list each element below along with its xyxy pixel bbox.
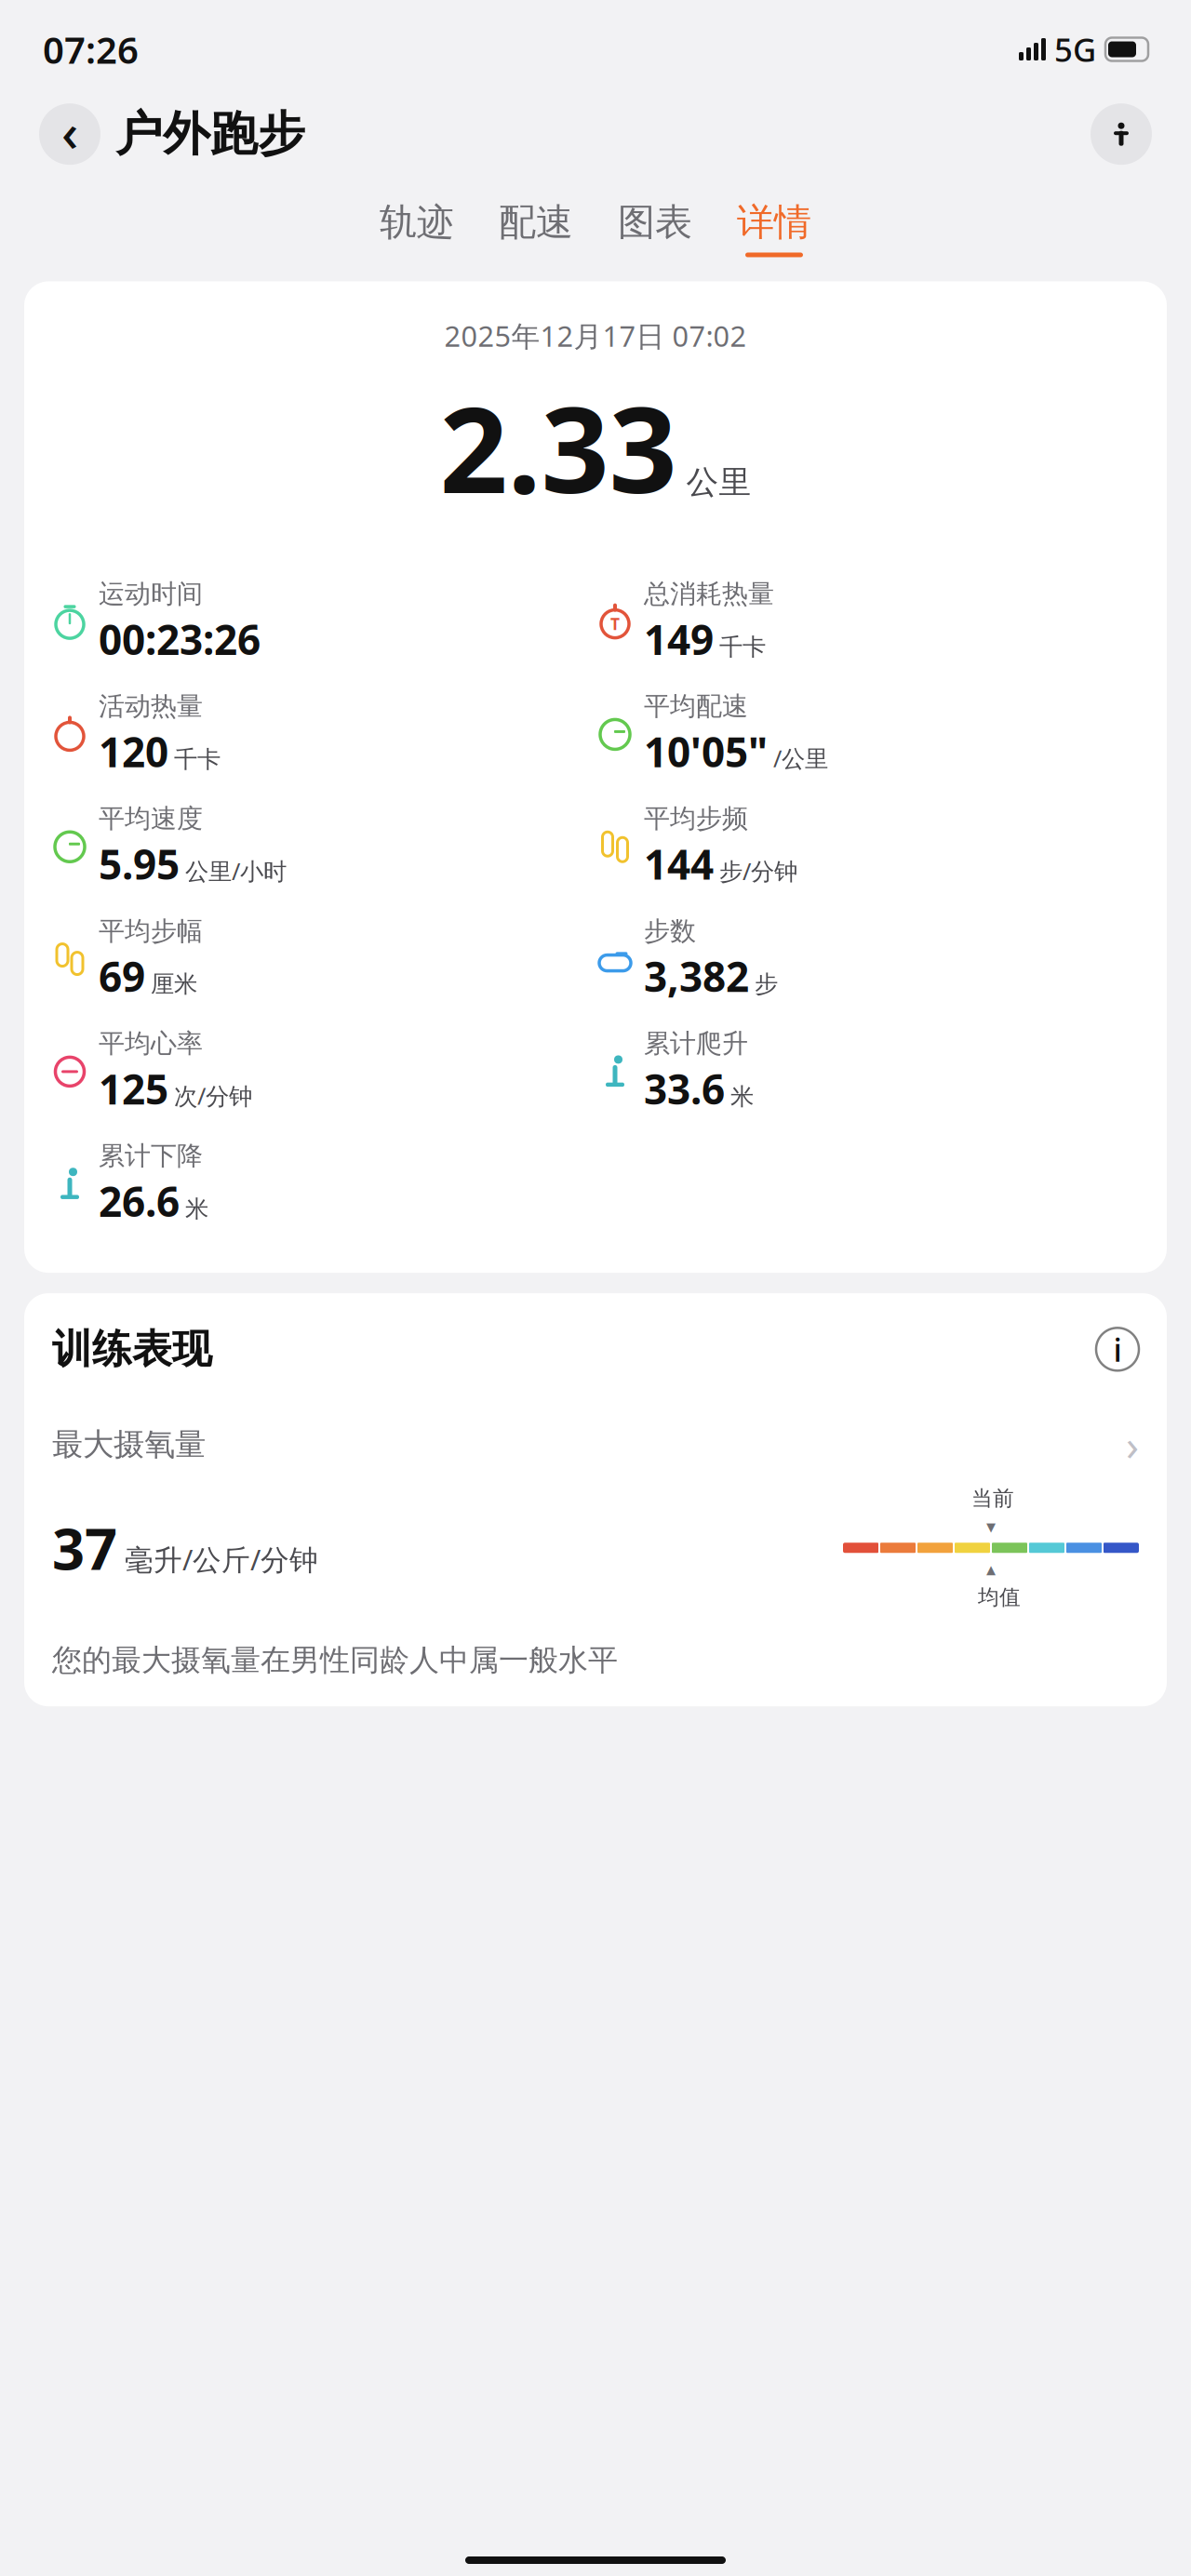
staticText: 33.6: [644, 1061, 725, 1116]
staticText: 公里: [686, 462, 751, 502]
staticText: 149: [644, 612, 714, 666]
staticText: 5.95: [99, 837, 180, 891]
staticText: 最大摄氧量: [52, 1425, 206, 1463]
button[interactable]: 图表: [612, 199, 698, 257]
staticText: 米: [730, 1082, 754, 1111]
staticText: 步数: [644, 915, 696, 947]
staticText: 详情: [737, 199, 811, 245]
staticText: 3,382: [644, 949, 749, 1003]
staticText: 平均步幅: [99, 915, 203, 947]
staticText: 均值: [978, 1584, 1021, 1610]
staticText: 平均心率: [99, 1028, 203, 1060]
staticText: 10'05": [644, 724, 768, 778]
staticText: 次/分钟: [174, 1080, 252, 1111]
staticText: 144: [644, 837, 714, 891]
staticText: 步: [755, 970, 778, 999]
staticText: 125: [99, 1061, 168, 1116]
staticText: 公里/小时: [185, 855, 287, 886]
button[interactable]: 轨迹: [374, 199, 460, 257]
staticText: 步/分钟: [719, 855, 797, 886]
staticText: 当前: [971, 1485, 1014, 1511]
staticText: 您的最大摄氧量在男性同龄人中属一般水平: [52, 1642, 618, 1678]
staticText: ▾: [986, 1516, 996, 1537]
staticText: T: [610, 613, 620, 635]
staticText: 米: [185, 1195, 208, 1223]
staticText: ▴: [986, 1559, 996, 1580]
staticText: 累计爬升: [644, 1028, 748, 1060]
staticText: i: [1113, 1328, 1122, 1371]
staticText: 活动热量: [99, 690, 203, 722]
staticText: 配速: [499, 199, 573, 245]
staticText: 37: [52, 1510, 117, 1586]
staticText: 2.33: [440, 368, 677, 526]
staticText: 运动时间: [99, 578, 203, 610]
staticText: 千卡: [719, 633, 766, 661]
staticText: 07:26: [43, 25, 139, 74]
staticText: /公里: [773, 742, 828, 774]
staticText: 69: [99, 949, 145, 1003]
staticText: 户外跑步: [115, 105, 305, 163]
button[interactable]: 详情: [731, 199, 817, 257]
button[interactable]: 配速: [493, 199, 579, 257]
staticText: 120: [99, 724, 168, 778]
button[interactable]: 说明: [1096, 1328, 1139, 1371]
staticText: 平均速度: [99, 803, 203, 835]
staticText: 轨迹: [380, 199, 454, 245]
staticText: 训练表现: [52, 1325, 212, 1374]
staticText: ›: [1126, 1416, 1139, 1472]
button[interactable]: 运动类型: [1091, 103, 1152, 165]
staticText: 毫升/公斤/分钟: [125, 1540, 318, 1578]
staticText: 总消耗热量: [644, 578, 774, 610]
staticText: 图表: [618, 199, 692, 245]
staticText: 26.6: [99, 1174, 180, 1228]
staticText: 2025年12月17日 07:02: [444, 317, 747, 355]
staticText: 00:23:26: [99, 612, 261, 666]
staticText: ‹: [61, 97, 78, 166]
staticText: 累计下降: [99, 1140, 203, 1172]
button[interactable]: 最大摄氧量: [52, 1374, 1139, 1472]
staticText: 平均配速: [644, 690, 748, 722]
staticText: 厘米: [151, 970, 197, 999]
staticText: 5G: [1054, 28, 1096, 71]
staticText: 平均步频: [644, 803, 748, 835]
button[interactable]: 返回: [39, 97, 100, 172]
staticText: 千卡: [174, 745, 221, 774]
